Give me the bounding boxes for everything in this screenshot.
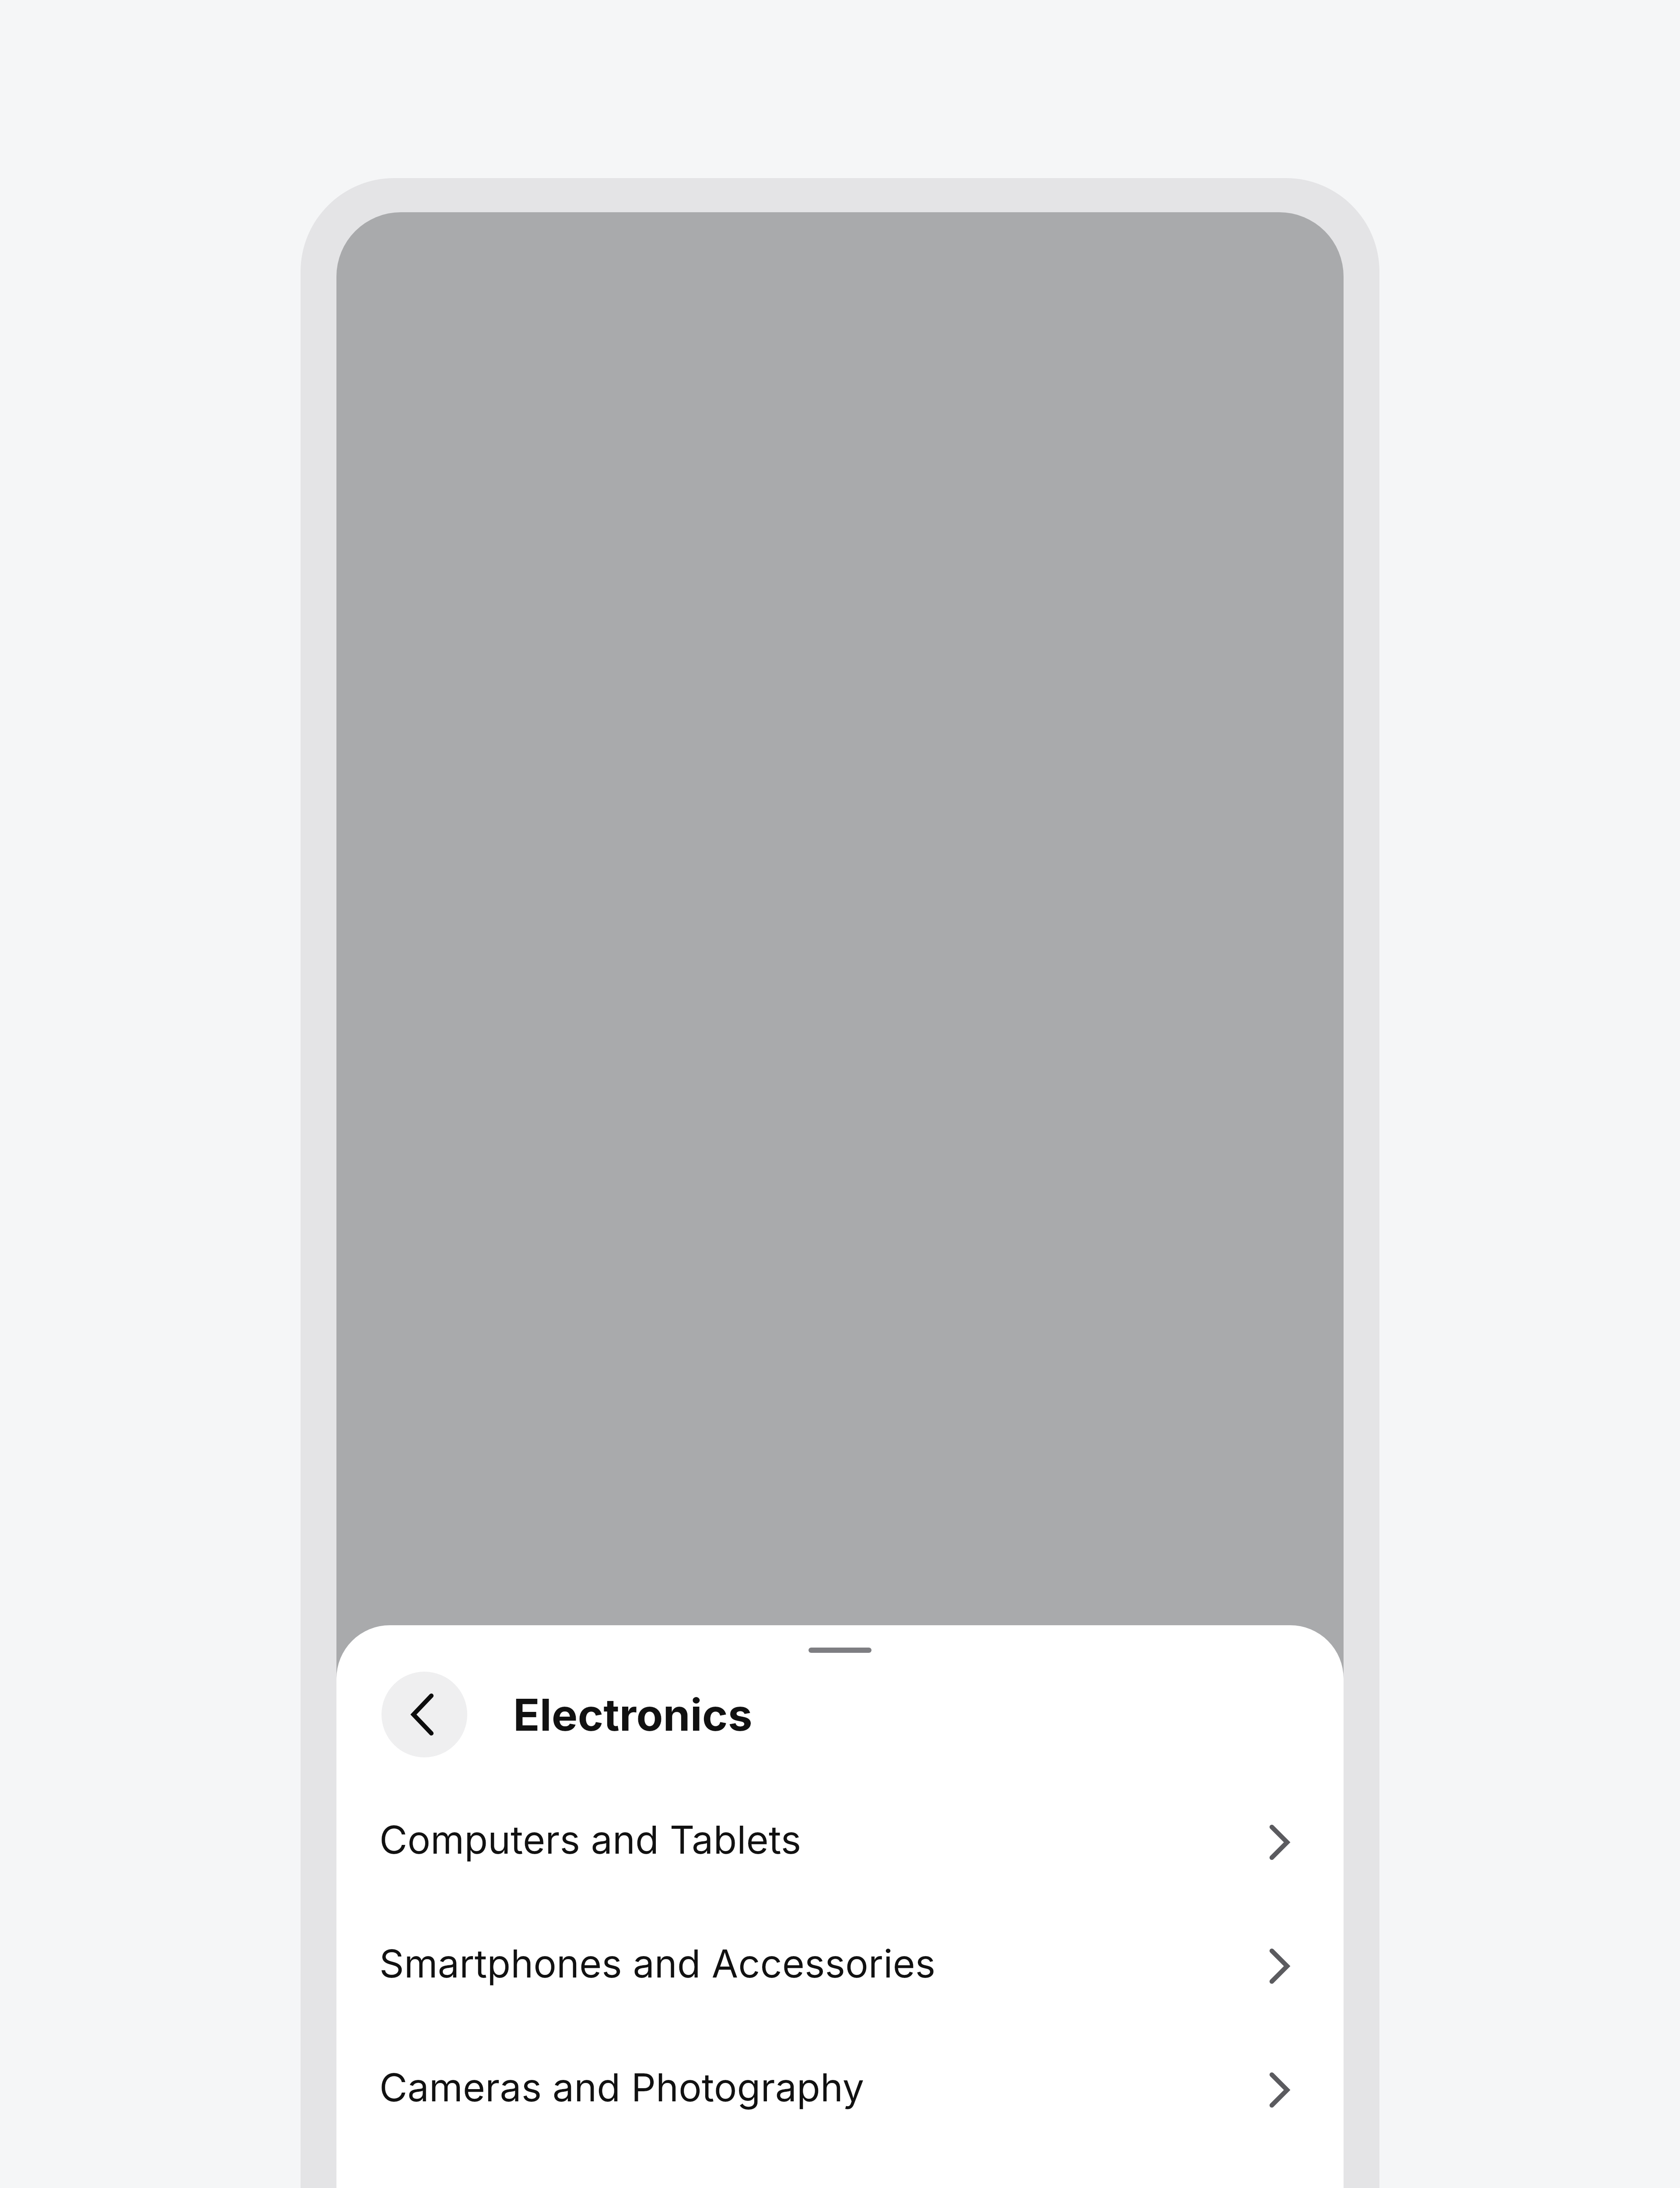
button[interactable]: Computers and Tablets	[336, 1778, 1344, 1901]
staticText: Electronics	[513, 1688, 752, 1741]
staticText: Computers and Tablets	[379, 1816, 1271, 1863]
staticText: Cameras and Photography	[379, 2064, 1271, 2111]
button[interactable]: Cameras and Photography	[336, 2025, 1344, 2149]
button[interactable]: Smartphones and Accessories	[336, 1901, 1344, 2025]
button[interactable]: Back	[381, 1672, 467, 1757]
staticText: Smartphones and Accessories	[379, 1940, 1271, 1987]
